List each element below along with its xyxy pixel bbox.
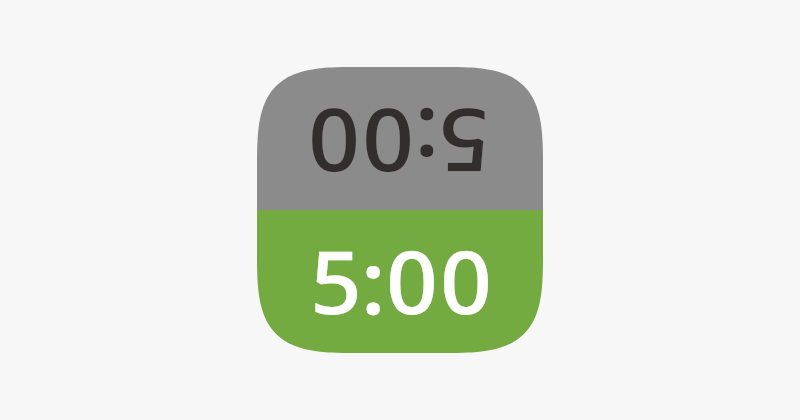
staticText: : — [412, 84, 441, 202]
staticText: : — [359, 221, 388, 339]
staticText: 0 — [386, 221, 438, 339]
staticText: 0 — [440, 221, 492, 339]
staticText: 0 — [308, 84, 360, 202]
staticText: 5 — [438, 84, 490, 202]
staticText: 0 — [362, 84, 414, 202]
staticText: 5 — [310, 221, 362, 339]
button[interactable]: Timer 5 minutes — [257, 67, 543, 353]
